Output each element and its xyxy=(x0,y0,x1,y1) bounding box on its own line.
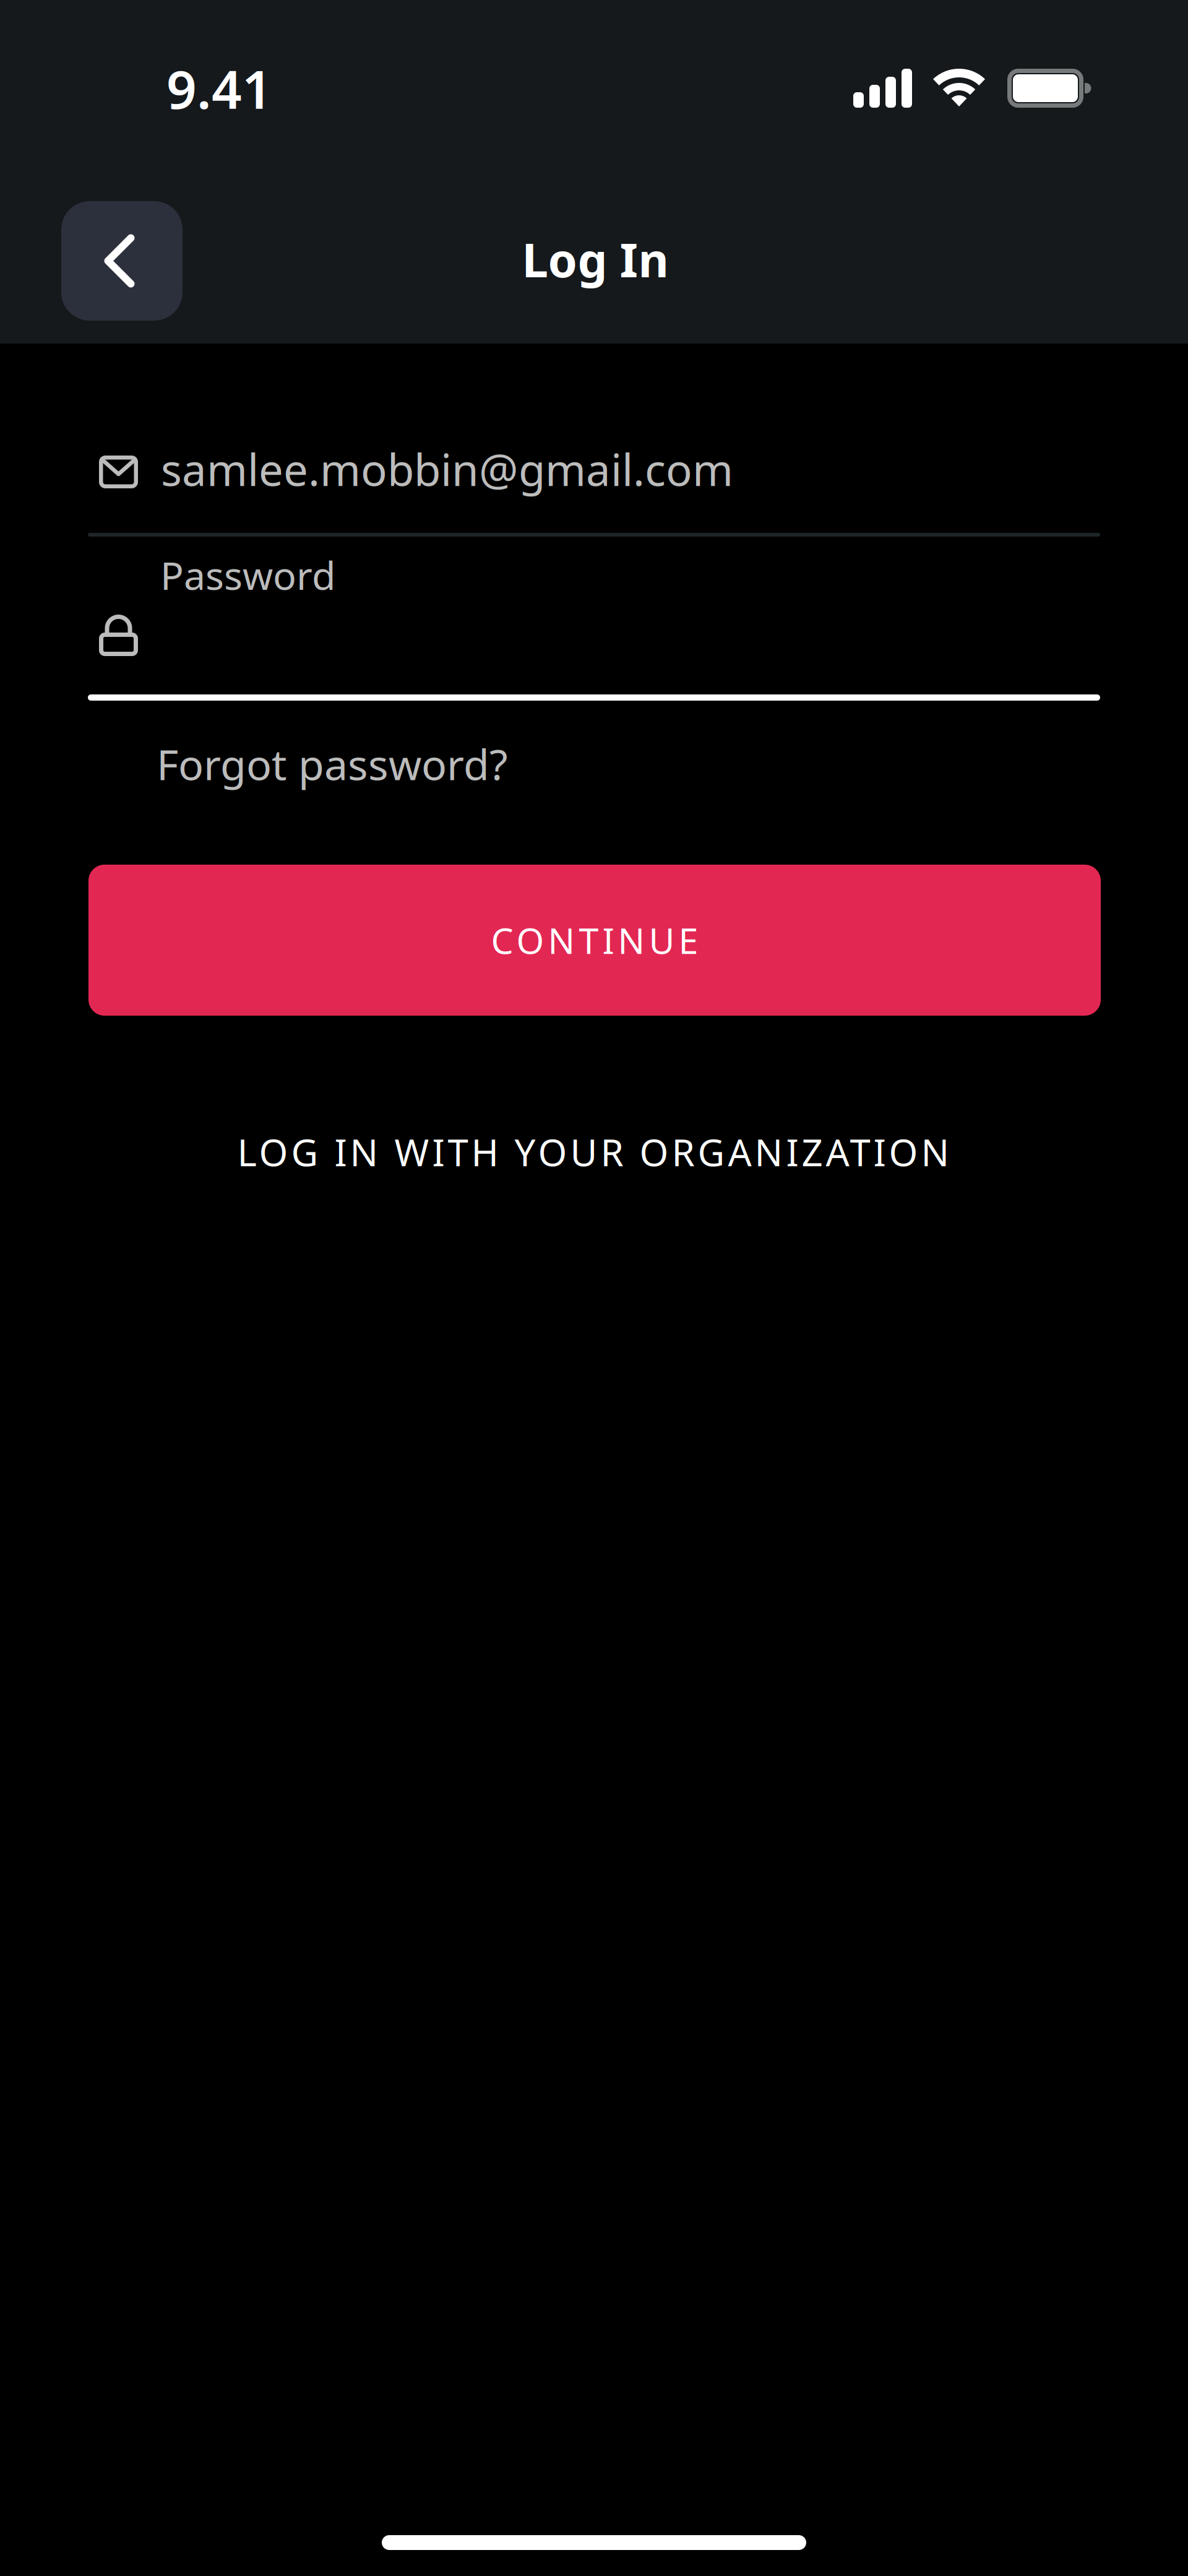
staticText: Log In xyxy=(522,228,669,290)
button[interactable]: Forgot password? xyxy=(157,736,508,792)
button[interactable]: samlee.mobbin@gmail.com xyxy=(88,440,1100,537)
staticText: samlee.mobbin@gmail.com xyxy=(161,440,733,498)
button[interactable]: Password xyxy=(88,549,1100,701)
button[interactable]: Back xyxy=(61,201,183,321)
staticText: Forgot password? xyxy=(157,736,508,792)
staticText: 9.41 xyxy=(166,53,272,123)
button[interactable]: CONTINUE xyxy=(88,865,1101,1016)
staticText: LOG IN WITH YOUR ORGANIZATION xyxy=(237,1127,949,1177)
staticText: CONTINUE xyxy=(491,917,698,964)
button[interactable]: LOG IN WITH YOUR ORGANIZATION xyxy=(87,1121,1100,1183)
staticText: Password xyxy=(160,549,336,600)
